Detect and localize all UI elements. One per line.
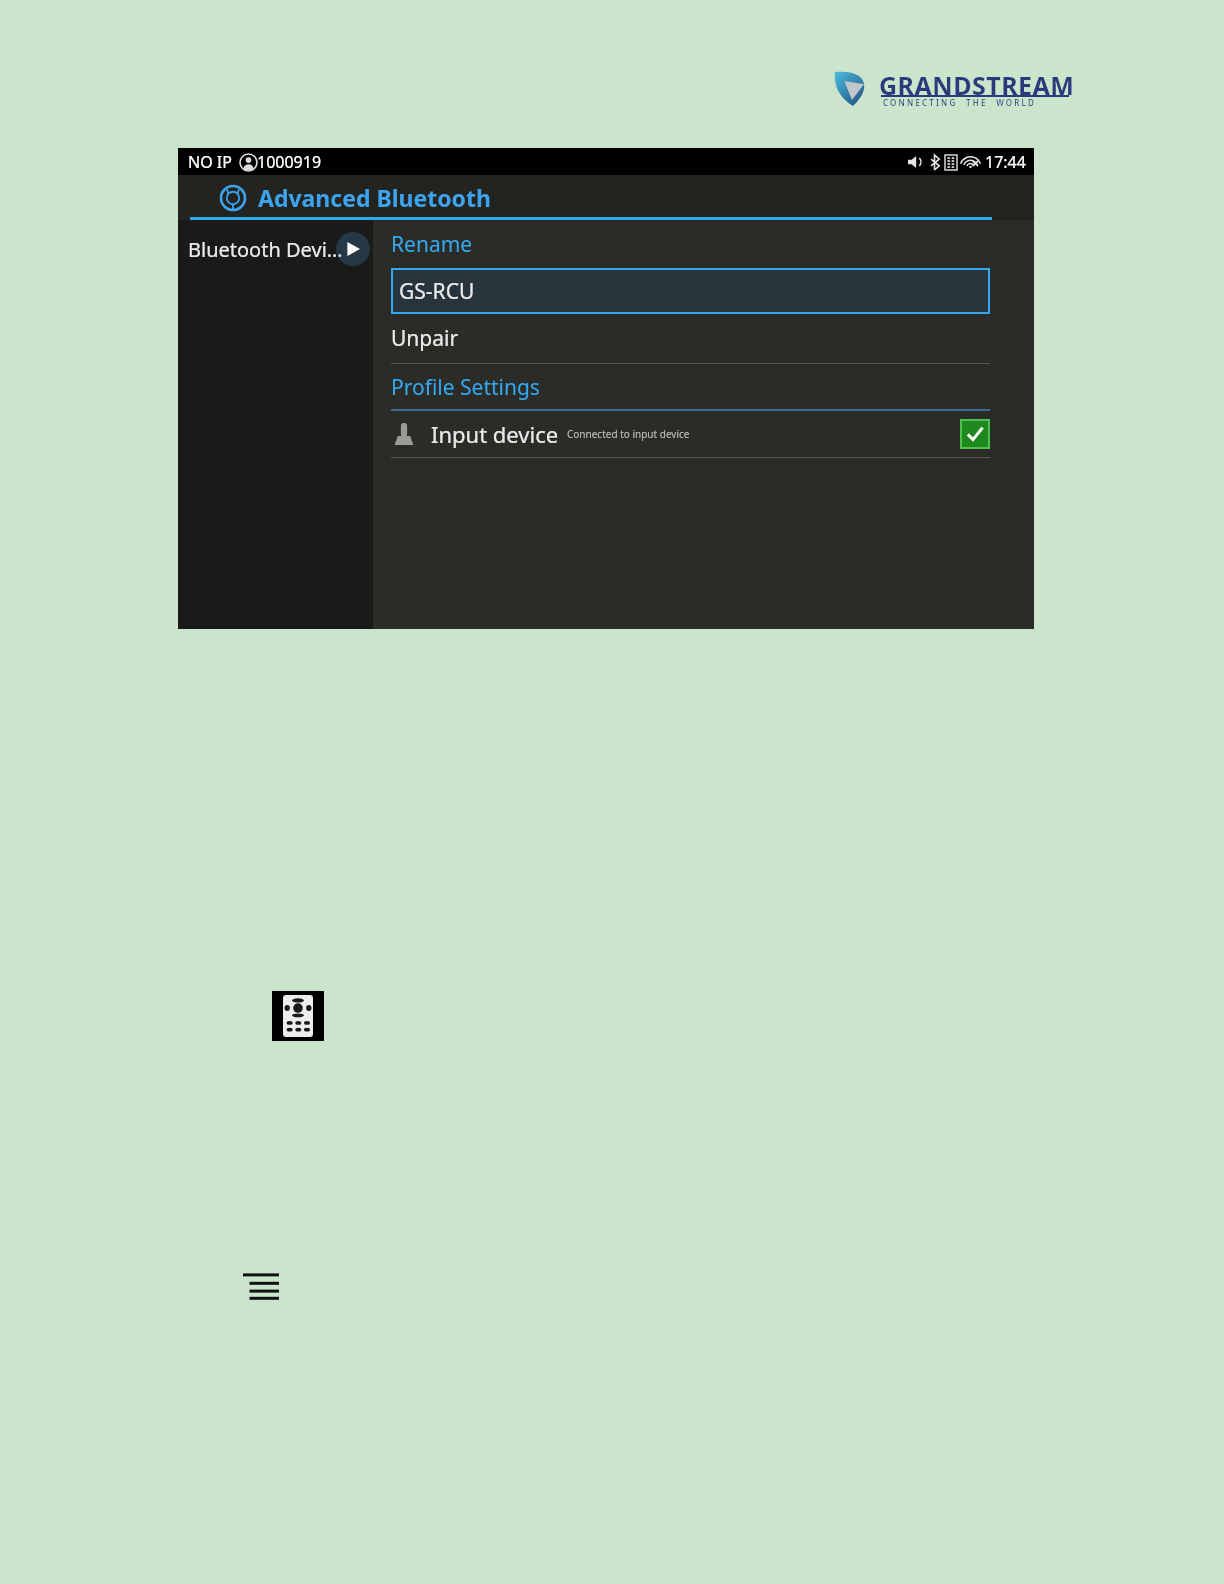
button[interactable]: Unpair [391, 314, 990, 363]
staticText: Advanced Bluetooth [258, 182, 491, 213]
staticText: Bluetooth Devic... [188, 236, 343, 263]
staticText: Unpair [391, 324, 459, 353]
staticText: CONNECTING THE WORLD [883, 97, 1037, 108]
other: Menu [243, 1271, 279, 1301]
staticText: Rename [391, 230, 473, 259]
other: Bluetooth settings [220, 185, 246, 211]
button[interactable]: Bluetooth Devic... [178, 220, 373, 278]
staticText: Connected to input device [567, 427, 690, 441]
staticText: Input device [431, 419, 559, 449]
staticText: 1000919 [257, 151, 322, 173]
staticText: GRANDSTREAM [879, 68, 1075, 102]
button[interactable]: Input device [391, 411, 990, 457]
button[interactable]: GS-RCU [391, 268, 990, 314]
staticText: GS-RCU [399, 277, 475, 306]
button[interactable]: Input device enabled [960, 419, 990, 449]
staticText: 17:44 [985, 151, 1026, 173]
staticText: NO IP [188, 151, 232, 173]
staticText: Profile Settings [391, 373, 540, 402]
other: Expand [343, 239, 363, 259]
